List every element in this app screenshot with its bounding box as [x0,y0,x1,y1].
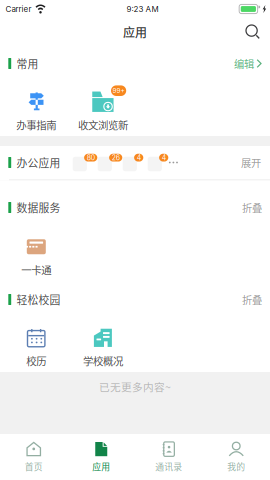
staticText: 99+ [113,87,125,95]
button[interactable]: 99+ [70,81,136,136]
staticText: 应用 [92,460,110,473]
staticText: 通讯录 [155,460,182,473]
button[interactable]: 一卡通 [3,226,70,281]
button[interactable]: 折叠 [230,194,262,221]
staticText: 学校概况 [83,353,123,368]
button[interactable]: 应用 [67,435,135,479]
button[interactable]: 我的 [202,435,270,479]
button[interactable]: 校历 [3,317,70,372]
staticText: 校历 [26,353,46,368]
staticText: 常用 [16,56,38,71]
staticText: 办公应用 [16,155,60,170]
staticText: 26 [112,153,120,162]
staticText: 一卡通 [21,262,51,277]
button[interactable]: 折叠 [230,286,262,313]
staticText: 4 [137,153,141,162]
button[interactable]: 学校概况 [70,317,136,372]
button[interactable]: 通讯录 [135,435,202,479]
button[interactable]: 办事指南 [3,81,70,136]
staticText: 折叠 [242,292,262,307]
staticText: 应用 [123,23,147,41]
staticText: 编辑 [234,56,254,71]
staticText: 数据服务 [16,200,60,215]
staticText: 首页 [25,460,43,473]
staticText: 80 [87,153,95,162]
staticText: 我的 [227,460,245,473]
staticText: 展开 [241,155,261,170]
staticText: 4 [162,153,166,162]
staticText: 办事指南 [16,117,56,132]
button[interactable]: 展开 [229,148,261,177]
staticText: 已无更多内容~ [99,379,171,394]
staticText: 折叠 [242,200,262,215]
button[interactable]: 首页 [0,435,67,479]
staticText: 9:23 AM [127,4,159,14]
staticText: Carrier [5,4,31,14]
button[interactable]: 编辑 [222,50,262,77]
staticText: 轻松校园 [16,292,60,307]
button[interactable]: Search [234,19,270,45]
staticText: 收文浏览新 [78,117,128,132]
